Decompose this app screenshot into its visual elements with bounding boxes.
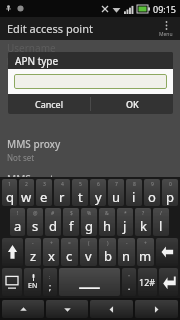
- staticText: -: [32, 240, 34, 247]
- staticText: y: [95, 188, 102, 206]
- button[interactable]: 0: [162, 179, 178, 206]
- button[interactable]: Cancel: [8, 94, 90, 114]
- button[interactable]: 3: [36, 179, 52, 206]
- button[interactable]: [14, 74, 167, 89]
- staticText: z: [30, 247, 37, 265]
- staticText: ": [128, 274, 131, 281]
- staticText: =: [68, 240, 71, 247]
- staticText: @: [33, 210, 38, 217]
- staticText: o: [148, 188, 156, 206]
- button[interactable]: 2: [19, 179, 34, 206]
- staticText: (: [88, 240, 90, 247]
- staticText: ?: [142, 210, 145, 217]
- staticText: &: [105, 210, 109, 217]
- staticText: b: [104, 247, 112, 265]
- staticText: ;: [49, 281, 52, 292]
- button[interactable]: *: [117, 208, 133, 236]
- button[interactable]: Space: [59, 268, 120, 296]
- button[interactable]: Up: [2, 300, 44, 318]
- button[interactable]: Left: [90, 300, 133, 318]
- staticText: p: [166, 188, 174, 206]
- button[interactable]: 4: [54, 179, 70, 206]
- staticText: Not set: [7, 152, 35, 163]
- button[interactable]: (: [80, 238, 97, 266]
- button[interactable]: Enter: [159, 268, 178, 296]
- staticText: g: [85, 217, 93, 235]
- staticText: 2: [25, 181, 28, 188]
- button[interactable]: 12#: [138, 268, 157, 296]
- staticText: EN: [28, 281, 38, 291]
- button[interactable]: 1: [2, 179, 17, 206]
- button[interactable]: %: [81, 208, 97, 236]
- staticText: $: [70, 210, 73, 217]
- staticText: MMS port: [7, 172, 54, 177]
- button[interactable]: 7: [108, 179, 124, 206]
- staticText: 0: [169, 181, 172, 188]
- button[interactable]: ?: [135, 208, 151, 236]
- staticText: Menu: [159, 31, 173, 38]
- button[interactable]: /: [153, 208, 169, 236]
- staticText: d: [49, 217, 57, 235]
- staticText: Not set: [7, 56, 35, 67]
- button[interactable]: Backspace: [156, 238, 178, 266]
- button[interactable]: 9: [144, 179, 160, 206]
- button[interactable]: #: [45, 208, 61, 236]
- staticText: k: [140, 217, 147, 235]
- staticText: v: [85, 247, 92, 265]
- button[interactable]: Keyboard settings: [2, 268, 22, 296]
- staticText: 4: [61, 181, 64, 188]
- staticText: +: [144, 240, 147, 247]
- button[interactable]: &: [99, 208, 115, 236]
- button[interactable]: :: [43, 268, 57, 296]
- staticText: %: [87, 210, 92, 217]
- button[interactable]: ": [122, 268, 136, 296]
- button[interactable]: Down: [46, 300, 88, 318]
- staticText: !: [17, 210, 19, 217]
- button[interactable]: Menu: [159, 20, 173, 38]
- button[interactable]: @: [27, 208, 43, 236]
- button[interactable]: -: [118, 238, 135, 266]
- button[interactable]: 6: [90, 179, 106, 206]
- staticText: c: [66, 247, 73, 265]
- button[interactable]: +: [43, 238, 59, 266]
- staticText: l: [159, 217, 163, 235]
- button[interactable]: ): [99, 238, 116, 266]
- staticText: MMS proxy: [7, 137, 61, 151]
- staticText: #: [51, 210, 55, 217]
- staticText: APN type: [15, 54, 59, 68]
- staticText: +: [50, 240, 53, 247]
- button[interactable]: 5: [72, 179, 88, 206]
- staticText: j: [123, 217, 127, 235]
- staticText: :: [49, 274, 51, 281]
- staticText: x: [48, 247, 55, 265]
- button[interactable]: Right: [135, 300, 178, 318]
- staticText: r: [59, 188, 65, 206]
- button[interactable]: 8: [126, 179, 142, 206]
- staticText: ): [107, 240, 109, 247]
- staticText: Edit access point: [7, 21, 93, 36]
- staticText: 1: [8, 181, 11, 188]
- staticText: u: [112, 188, 121, 206]
- staticText: t: [78, 188, 83, 206]
- button[interactable]: +: [137, 238, 154, 266]
- button[interactable]: -: [25, 238, 41, 266]
- staticText: s: [32, 217, 39, 235]
- staticText: m: [139, 247, 152, 265]
- staticText: f: [69, 217, 74, 235]
- staticText: *: [124, 210, 127, 217]
- staticText: 5: [79, 181, 82, 188]
- staticText: /: [160, 210, 162, 217]
- staticText: 8: [133, 181, 136, 188]
- staticText: -: [126, 240, 128, 247]
- staticText: i: [132, 188, 136, 206]
- staticText: Cancel: [35, 98, 64, 110]
- button[interactable]: =: [61, 238, 78, 266]
- button[interactable]: Voice input EN: [24, 268, 41, 296]
- button[interactable]: Shift: [2, 238, 23, 266]
- button[interactable]: OK: [91, 94, 173, 114]
- staticText: 3: [43, 181, 46, 188]
- staticText: 09:15: [153, 3, 177, 15]
- button[interactable]: $: [63, 208, 79, 236]
- button[interactable]: !: [10, 208, 25, 236]
- staticText: h: [103, 217, 112, 235]
